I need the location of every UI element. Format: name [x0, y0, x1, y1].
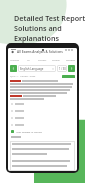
staticText: Detailed Test Reports, Solutions and Exp… [14, 13, 85, 43]
staticText: All Exams Analysis & Solutions [17, 50, 63, 54]
button[interactable] [11, 103, 74, 105]
button[interactable]: Next [68, 65, 75, 72]
button[interactable]: Previous [10, 65, 17, 72]
button[interactable]: Wrong [49, 56, 63, 63]
button[interactable]: 1 / 30 [57, 65, 67, 72]
button[interactable] [11, 117, 74, 119]
button[interactable]: Back [11, 50, 15, 54]
button[interactable]: Correct [11, 130, 74, 133]
staticText: Wrong [52, 58, 60, 61]
button[interactable]: Skipped [63, 56, 77, 63]
staticText: English Language [20, 67, 44, 71]
button[interactable] [62, 75, 75, 78]
staticText: Analysis [10, 58, 20, 61]
staticText: Correct [38, 58, 47, 61]
other: Correct [11, 130, 14, 133]
staticText: All [27, 58, 30, 61]
button[interactable]: Correct [35, 56, 49, 63]
staticText: Q.No : 1 Correct : 2025 [10, 75, 36, 78]
button[interactable] [11, 110, 74, 112]
button[interactable]: All [21, 56, 35, 63]
staticText: Your answer is correct [16, 130, 42, 133]
staticText: Skipped [66, 58, 75, 61]
button[interactable] [11, 124, 74, 126]
staticText: 1 / 30 [59, 67, 66, 71]
button[interactable]: Back [8, 48, 77, 56]
button[interactable]: Analysis [8, 56, 21, 63]
button[interactable]: English Language [18, 65, 56, 72]
